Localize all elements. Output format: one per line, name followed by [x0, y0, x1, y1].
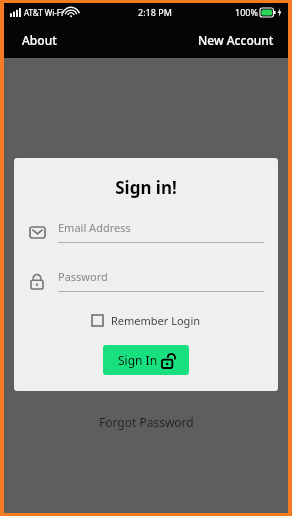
staticText: 100%: [235, 6, 258, 18]
other: Sign in: [162, 353, 174, 368]
staticText: Sign in!: [28, 176, 264, 199]
button[interactable]: New Account: [184, 24, 288, 56]
button[interactable]: Password: [58, 269, 264, 292]
staticText: Email Address: [58, 220, 131, 235]
button[interactable]: About: [4, 24, 75, 56]
staticText: New Account: [198, 32, 274, 48]
staticText: About: [22, 32, 57, 48]
button[interactable]: Forgot Password: [4, 414, 288, 430]
staticText: Forgot Password: [99, 414, 194, 430]
staticText: Remember Login: [111, 313, 201, 328]
staticText: Password: [58, 269, 108, 284]
button[interactable]: Email Address: [58, 220, 264, 243]
staticText: 2:18 PM: [138, 6, 172, 18]
staticText: AT&T Wi-Fi: [24, 7, 64, 18]
button[interactable]: Remember Login: [28, 313, 264, 328]
button[interactable]: Sign In: [103, 345, 189, 375]
staticText: Sign In: [118, 352, 158, 368]
